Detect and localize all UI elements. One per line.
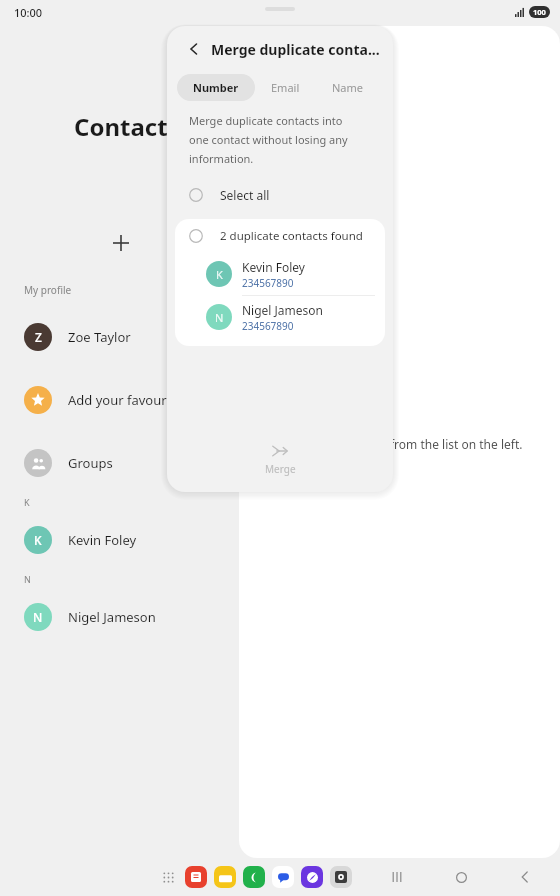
- button[interactable]: Back: [181, 36, 207, 62]
- button[interactable]: Z: [0, 305, 239, 368]
- staticText: N: [24, 573, 31, 585]
- staticText: Number: [193, 80, 239, 95]
- button[interactable]: Groups: [0, 431, 239, 494]
- button[interactable]: K: [0, 508, 239, 571]
- button[interactable]: Samsung Notes: [185, 866, 207, 888]
- staticText: Kevin Foley: [242, 259, 305, 275]
- staticText: 234567890: [242, 276, 294, 290]
- staticText: Select all: [220, 187, 270, 203]
- button[interactable]: N: [175, 296, 385, 338]
- button[interactable]: Add contact: [0, 223, 239, 263]
- staticText: 100: [533, 7, 546, 17]
- button[interactable]: Home: [448, 864, 474, 890]
- button[interactable]: Messages: [272, 866, 294, 888]
- staticText: 234567890: [242, 319, 294, 333]
- staticText: 10:00: [14, 5, 43, 20]
- staticText: 2 duplicate contacts found: [220, 228, 363, 244]
- staticText: K: [34, 532, 42, 548]
- button[interactable]: Select all: [167, 180, 393, 210]
- staticText: Zoe Taylor: [68, 328, 131, 346]
- staticText: K: [216, 267, 223, 282]
- button[interactable]: Phone: [243, 866, 265, 888]
- button[interactable]: 2 duplicate contacts found: [175, 219, 385, 253]
- staticText: Merge duplicate conta...: [211, 40, 380, 59]
- button[interactable]: Apps: [155, 864, 181, 890]
- staticText: Nigel Jameson: [68, 608, 156, 626]
- button[interactable]: K: [175, 253, 385, 295]
- button[interactable]: My Files: [214, 866, 236, 888]
- staticText: Kevin Foley: [68, 531, 137, 549]
- staticText: My profile: [24, 283, 72, 297]
- staticText: Name: [332, 80, 364, 95]
- staticText: Email: [271, 80, 300, 95]
- button[interactable]: Camera: [330, 866, 352, 888]
- staticText: Select a contact from the list on the le…: [299, 436, 523, 452]
- button[interactable]: Recent apps: [384, 864, 410, 890]
- button[interactable]: Merge: [167, 443, 393, 492]
- button[interactable]: Internet: [301, 866, 323, 888]
- staticText: Merge: [265, 462, 296, 476]
- button[interactable]: Email: [255, 74, 316, 101]
- staticText: N: [33, 609, 43, 625]
- staticText: Nigel Jameson: [242, 302, 324, 318]
- staticText: Merge duplicate contacts into one contac…: [189, 113, 363, 166]
- staticText: K: [24, 496, 30, 508]
- button[interactable]: Back: [512, 864, 538, 890]
- button[interactable]: Add your favourite c: [0, 368, 239, 431]
- button[interactable]: N: [0, 585, 239, 648]
- staticText: Contacts: [74, 110, 180, 143]
- staticText: N: [215, 310, 224, 325]
- button[interactable]: Name: [316, 74, 380, 101]
- button[interactable]: Number: [177, 74, 255, 101]
- staticText: Groups: [68, 454, 113, 472]
- staticText: Z: [35, 329, 42, 345]
- staticText: Add your favourite c: [68, 391, 192, 409]
